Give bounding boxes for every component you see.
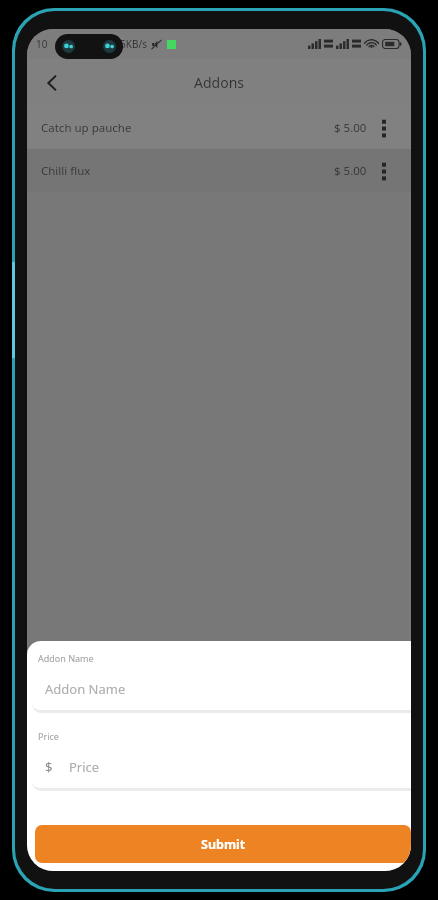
button[interactable]: Back bbox=[31, 62, 73, 104]
staticText: 5KB/s bbox=[120, 37, 147, 51]
button[interactable]: $ bbox=[31, 746, 411, 788]
button[interactable]: Chilli flux bbox=[27, 149, 411, 192]
staticText: Price bbox=[69, 758, 100, 776]
staticText: 10 bbox=[36, 37, 48, 51]
button[interactable]: Submit bbox=[35, 825, 411, 863]
staticText: $ 5.00 bbox=[334, 163, 367, 179]
staticText: Addon Name bbox=[38, 652, 94, 664]
button[interactable]: Catch up pauche bbox=[27, 106, 411, 149]
staticText: Catch up pauche bbox=[41, 120, 132, 136]
button[interactable]: More options bbox=[367, 106, 401, 149]
staticText: Submit bbox=[201, 836, 246, 853]
staticText: $ 5.00 bbox=[334, 120, 367, 136]
button[interactable]: Addon Name bbox=[31, 668, 411, 710]
staticText: Addon Name bbox=[45, 680, 126, 698]
staticText: Price bbox=[38, 730, 59, 742]
staticText: Chilli flux bbox=[41, 163, 91, 179]
staticText: Addons bbox=[194, 73, 244, 92]
button[interactable]: More options bbox=[367, 149, 401, 192]
staticText: $ bbox=[45, 758, 53, 776]
